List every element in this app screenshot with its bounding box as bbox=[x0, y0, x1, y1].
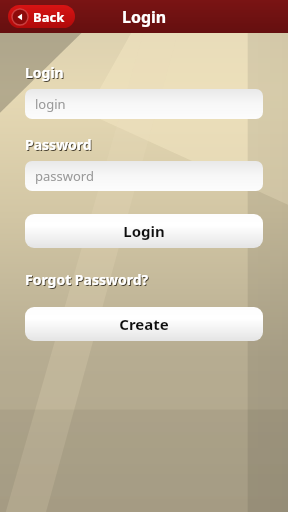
button[interactable]: Back bbox=[8, 5, 75, 28]
staticText: Password bbox=[25, 135, 92, 154]
staticText: login bbox=[35, 95, 66, 113]
button[interactable]: Forgot Password? bbox=[25, 270, 149, 289]
staticText: Login bbox=[123, 221, 165, 241]
staticText: Back bbox=[33, 8, 65, 26]
button[interactable]: password bbox=[25, 161, 263, 191]
staticText: Password bbox=[26, 136, 93, 155]
staticText: Forgot Password? bbox=[26, 271, 150, 290]
button[interactable]: Create bbox=[25, 307, 263, 341]
staticText: Forgot Password? bbox=[25, 270, 149, 289]
staticText: Login bbox=[122, 6, 167, 28]
staticText: Login bbox=[26, 64, 65, 83]
button[interactable]: login bbox=[25, 89, 263, 119]
button[interactable]: Login bbox=[25, 214, 263, 248]
staticText: Login bbox=[25, 63, 64, 82]
staticText: password bbox=[35, 167, 94, 185]
staticText: Create bbox=[119, 314, 169, 334]
